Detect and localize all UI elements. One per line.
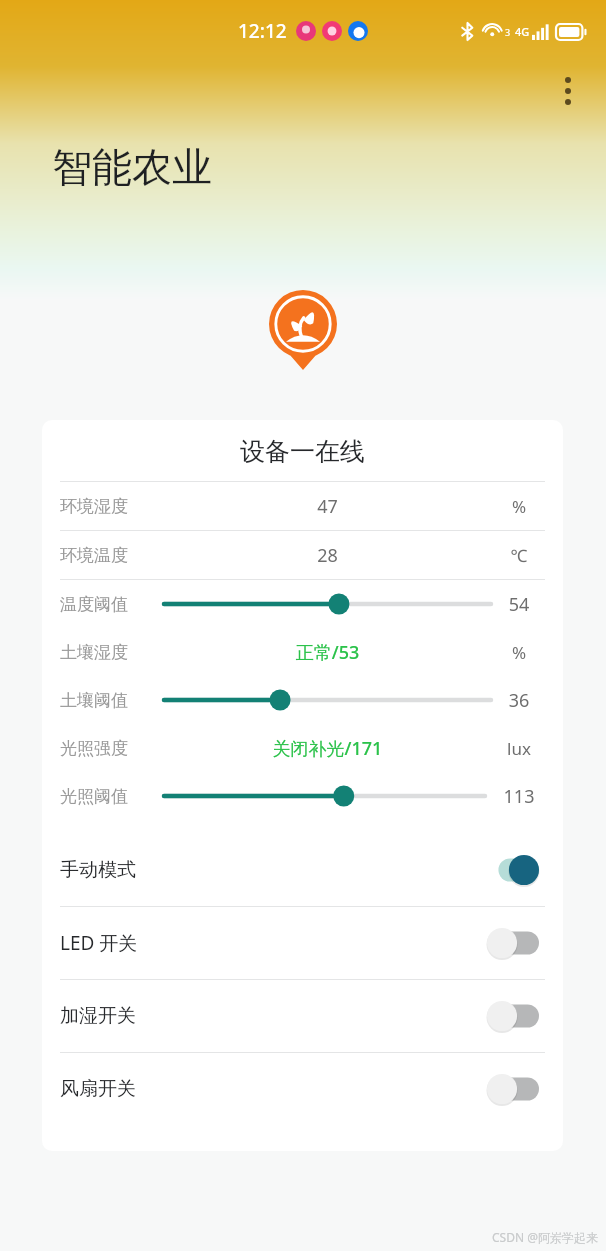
button[interactable]: 环境湿度 [42, 482, 563, 530]
staticText: ℃ [491, 544, 547, 567]
button[interactable]: 手动模式 [42, 834, 563, 906]
staticText: 关闭补光/171 [164, 736, 491, 761]
button[interactable]: 环境温度 [42, 531, 563, 579]
staticText: 光照强度 [60, 738, 164, 759]
staticText: 4G [515, 24, 530, 39]
staticText: 土壤湿度 [60, 642, 164, 663]
button[interactable]: 土壤阈值 [42, 676, 563, 724]
staticText: 113 [491, 784, 547, 809]
staticText: 手动模式 [60, 858, 487, 882]
button[interactable]: 加湿开关 [42, 980, 563, 1052]
staticText: 环境湿度 [60, 496, 164, 517]
staticText: 正常/53 [164, 640, 491, 665]
staticText: 36 [491, 688, 547, 713]
button[interactable]: LED 开关 [42, 907, 563, 979]
staticText: CSDN @阿岽学起来 [492, 1229, 598, 1245]
button[interactable]: 光照强度 [42, 724, 563, 772]
staticText: 风扇开关 [60, 1077, 487, 1101]
staticText: lux [491, 737, 547, 760]
staticText: 12:12 [238, 18, 287, 44]
staticText: 47 [164, 494, 491, 519]
staticText: 54 [491, 592, 547, 617]
staticText: % [491, 495, 547, 518]
staticText: 设备一在线 [42, 436, 563, 467]
staticText: 光照阈值 [60, 786, 164, 807]
staticText: 土壤阈值 [60, 690, 164, 711]
button[interactable]: More options [544, 67, 592, 115]
button[interactable]: 光照阈值 [42, 772, 563, 820]
staticText: 28 [164, 543, 491, 568]
button[interactable]: 土壤湿度 [42, 628, 563, 676]
staticText: 加湿开关 [60, 1004, 487, 1028]
staticText: % [491, 641, 547, 664]
button[interactable]: 风扇开关 [42, 1053, 563, 1125]
staticText: LED 开关 [60, 930, 487, 956]
button[interactable]: 温度阈值 [42, 580, 563, 628]
staticText: 温度阈值 [60, 594, 164, 615]
staticText: 环境温度 [60, 545, 164, 566]
staticText: 3 [505, 26, 511, 38]
staticText: 智能农业 [52, 142, 212, 192]
